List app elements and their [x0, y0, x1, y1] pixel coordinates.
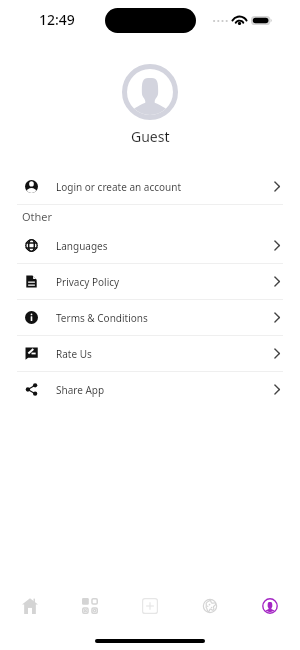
button[interactable]: Privacy Policy	[0, 264, 300, 299]
button[interactable]: Rate Us	[0, 336, 300, 371]
button[interactable]: Share App	[0, 372, 300, 407]
button[interactable]: Add	[120, 588, 180, 624]
staticText: Guest	[131, 127, 170, 146]
button[interactable]: Explore	[180, 588, 240, 624]
staticText: Languages	[56, 239, 108, 253]
button[interactable]: Terms & Conditions	[0, 300, 300, 335]
button[interactable]: Languages	[0, 228, 300, 263]
button[interactable]: Home	[0, 588, 60, 624]
staticText: Other	[22, 209, 53, 224]
staticText: Rate Us	[56, 347, 92, 361]
staticText: Privacy Policy	[56, 275, 120, 289]
staticText: Share App	[56, 383, 105, 397]
staticText: Login or create an account	[56, 180, 182, 194]
staticText: Terms & Conditions	[56, 311, 148, 325]
button[interactable]: Categories	[60, 588, 120, 624]
button[interactable]: Profile	[240, 588, 300, 624]
staticText: 12:49	[39, 10, 75, 29]
button[interactable]: Login or create an account	[0, 169, 300, 204]
